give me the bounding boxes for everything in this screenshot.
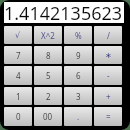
staticText: 4 <box>16 70 21 81</box>
button[interactable]: / <box>94 26 122 44</box>
button[interactable]: - <box>94 66 122 85</box>
staticText: 5 <box>46 70 51 81</box>
staticText: 7 <box>16 50 21 61</box>
staticText: √ <box>15 31 21 40</box>
button[interactable]: √ <box>4 26 32 44</box>
staticText: + <box>106 91 111 102</box>
button[interactable]: 1 <box>4 87 32 105</box>
button[interactable]: . <box>64 107 92 126</box>
staticText: X^2 <box>41 30 55 41</box>
button[interactable]: 6 <box>64 66 92 85</box>
button[interactable]: + <box>94 87 122 105</box>
staticText: - <box>107 70 110 81</box>
button[interactable]: % <box>64 26 92 44</box>
staticText: . <box>77 111 80 122</box>
button[interactable]: 2 <box>34 87 62 105</box>
button[interactable]: 00 <box>34 107 62 126</box>
staticText: 0 <box>16 111 21 122</box>
staticText: 1.4142135623 <box>4 1 123 22</box>
staticText: 2 <box>46 91 51 102</box>
button[interactable]: 0 <box>4 107 32 126</box>
button[interactable]: ∗ <box>94 46 122 64</box>
button[interactable]: 8 <box>34 46 62 64</box>
staticText: 9 <box>76 50 81 61</box>
button[interactable]: 9 <box>64 46 92 64</box>
staticText: 8 <box>46 50 51 61</box>
button[interactable]: 5 <box>34 66 62 85</box>
staticText: 6 <box>76 70 81 81</box>
button[interactable]: = <box>94 107 122 126</box>
button[interactable]: X^2 <box>34 26 62 44</box>
staticText: / <box>107 30 110 41</box>
staticText: ∗ <box>105 51 112 60</box>
staticText: % <box>75 30 82 41</box>
button[interactable]: 3 <box>64 87 92 105</box>
staticText: 00 <box>43 111 53 122</box>
staticText: 1 <box>16 91 21 102</box>
staticText: = <box>106 111 111 122</box>
staticText: 3 <box>76 91 81 102</box>
button[interactable]: 4 <box>4 66 32 85</box>
button[interactable]: 7 <box>4 46 32 64</box>
